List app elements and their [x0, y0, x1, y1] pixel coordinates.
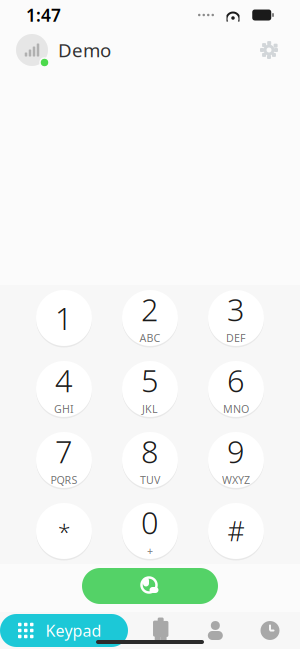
staticText: 3: [227, 289, 245, 330]
staticText: 2: [141, 289, 159, 330]
staticText: 1:47: [26, 3, 61, 26]
staticText: 7: [55, 431, 73, 472]
staticText: 1: [55, 298, 73, 338]
button[interactable]: 1: [21, 285, 107, 351]
staticText: *: [58, 516, 70, 546]
staticText: 8: [141, 431, 159, 472]
button[interactable]: Demo: [16, 34, 111, 66]
staticText: GHI: [54, 402, 74, 416]
staticText: Keypad: [45, 620, 101, 641]
button[interactable]: 0: [107, 498, 193, 564]
staticText: +: [147, 544, 153, 558]
button[interactable]: *: [21, 498, 107, 564]
staticText: JKL: [142, 402, 158, 416]
staticText: PQRS: [50, 473, 77, 487]
staticText: 9: [227, 431, 245, 472]
staticText: Demo: [58, 38, 111, 62]
button[interactable]: Call: [82, 568, 218, 604]
staticText: 4: [55, 360, 73, 401]
button[interactable]: 6: [193, 356, 279, 422]
button[interactable]: 8: [107, 427, 193, 493]
staticText: 0: [141, 502, 159, 543]
button[interactable]: Keypad: [0, 614, 128, 647]
staticText: DEF: [226, 331, 246, 345]
button[interactable]: Settings: [254, 35, 284, 65]
staticText: ABC: [139, 331, 160, 345]
button[interactable]: 5: [107, 356, 193, 422]
button[interactable]: 4: [21, 356, 107, 422]
button[interactable]: Contacts: [193, 614, 237, 647]
button[interactable]: 7: [21, 427, 107, 493]
staticText: #: [227, 513, 244, 549]
staticText: 6: [227, 360, 245, 401]
staticText: MNO: [223, 402, 249, 416]
staticText: WXYZ: [222, 473, 250, 487]
button[interactable]: 2: [107, 285, 193, 351]
button[interactable]: Recents: [248, 614, 292, 647]
staticText: 5: [141, 360, 159, 401]
staticText: TUV: [140, 473, 160, 487]
button[interactable]: 9: [193, 427, 279, 493]
button[interactable]: 3: [193, 285, 279, 351]
button[interactable]: Favorites: [139, 614, 183, 647]
button[interactable]: #: [193, 498, 279, 564]
